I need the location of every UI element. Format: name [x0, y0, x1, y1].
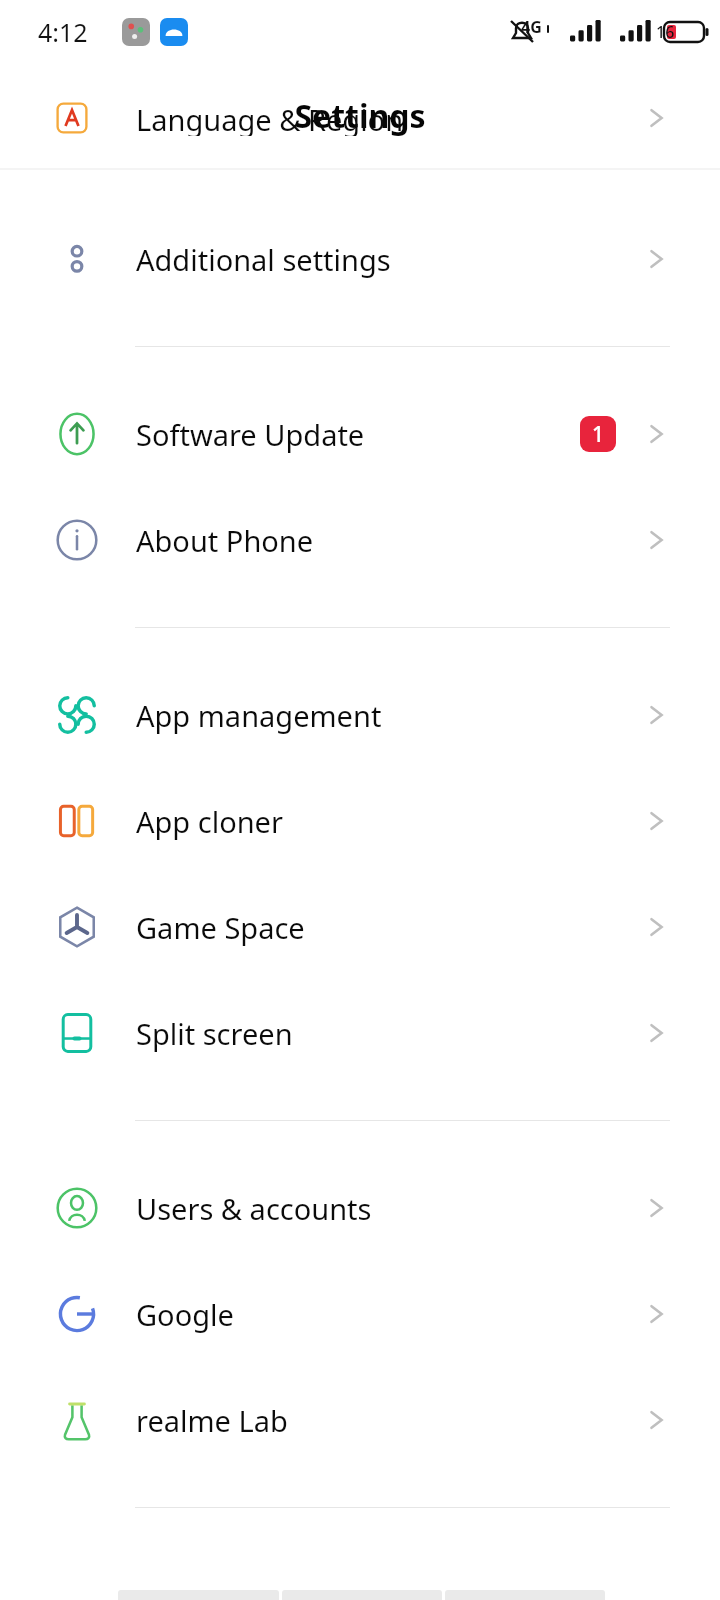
button[interactable]: realme Lab — [0, 1367, 720, 1473]
staticText: About Phone — [136, 521, 314, 560]
staticText: Software Update — [136, 415, 365, 454]
button[interactable]: App cloner — [0, 768, 720, 874]
staticText: Users & accounts — [136, 1189, 372, 1228]
staticText: Language & Region — [136, 100, 404, 136]
staticText: 4:12 — [38, 15, 88, 49]
staticText: Game Space — [136, 908, 305, 947]
button[interactable]: App management — [0, 662, 720, 768]
button[interactable]: Additional settings — [0, 206, 720, 312]
staticText: Split screen — [136, 1014, 293, 1053]
staticText: App cloner — [136, 802, 283, 841]
button[interactable]: Game Space — [0, 874, 720, 980]
staticText: 16 — [656, 21, 675, 43]
staticText: Additional settings — [136, 240, 391, 279]
button[interactable]: Split screen — [0, 980, 720, 1086]
button[interactable]: Users & accounts — [0, 1155, 720, 1261]
staticText: 1 — [592, 420, 605, 449]
staticText: Settings — [0, 94, 720, 138]
staticText: App management — [136, 696, 382, 735]
staticText: 4G — [521, 16, 542, 38]
staticText: Google — [136, 1295, 234, 1334]
button[interactable]: Software Update — [0, 381, 720, 487]
button[interactable]: Google — [0, 1261, 720, 1367]
button[interactable]: About Phone — [0, 487, 720, 593]
staticText: realme Lab — [136, 1401, 288, 1440]
